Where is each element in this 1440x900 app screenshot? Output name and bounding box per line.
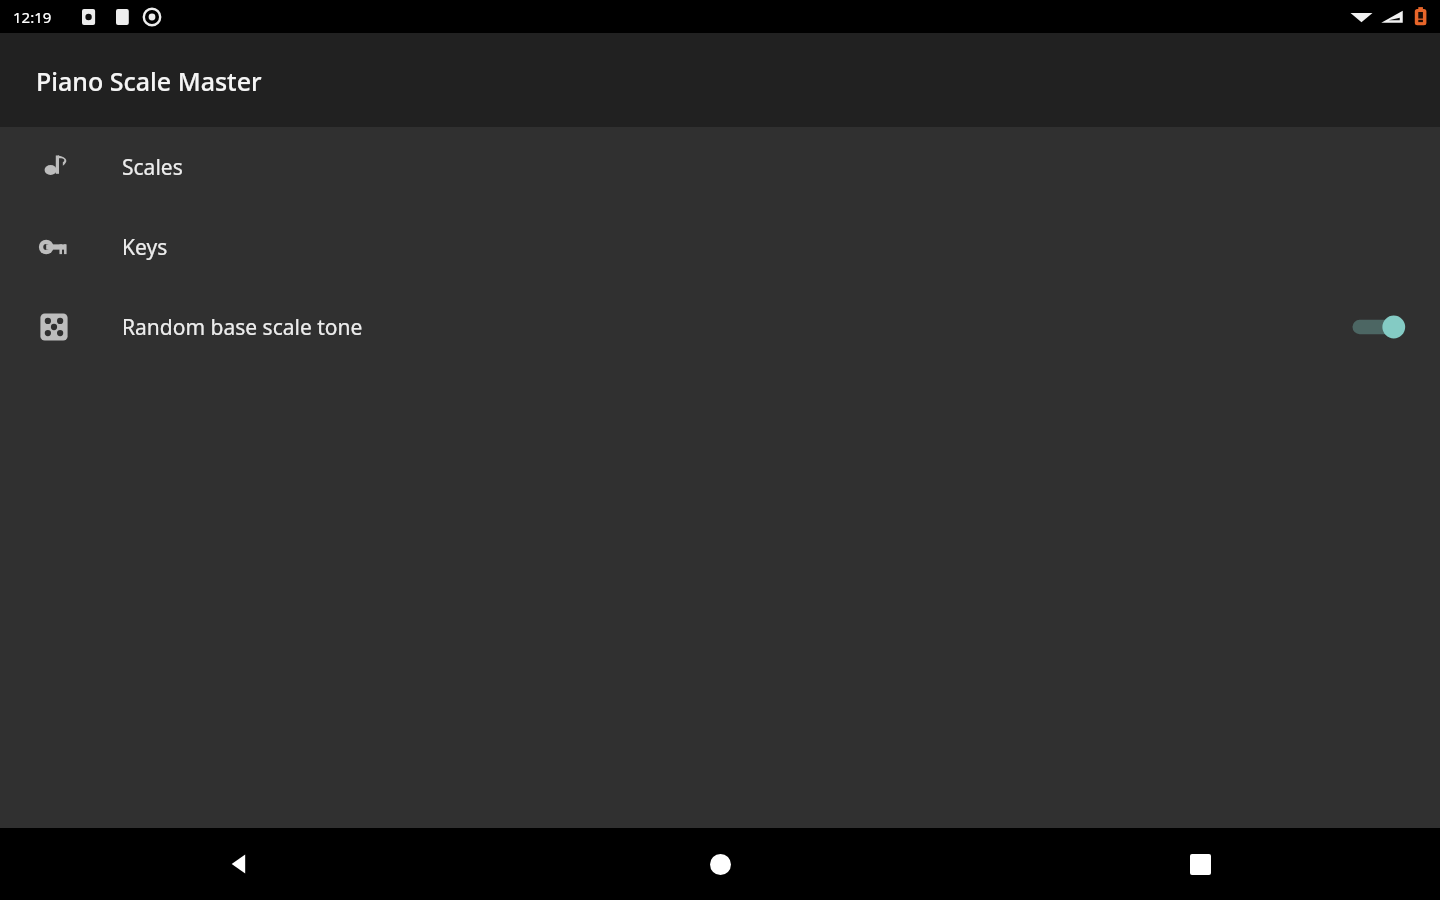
button[interactable]: Home [692,836,748,892]
staticText: Keys [122,233,168,262]
button[interactable]: Random base scale tone [0,287,1440,367]
button[interactable]: Recent apps [1172,836,1228,892]
staticText: 12:19 [13,7,52,27]
staticText: Random base scale tone [122,313,363,342]
other: Scales [37,150,71,184]
button[interactable]: Random base scale tone toggle [1350,307,1412,347]
button[interactable]: Scales [0,127,1440,207]
other: Random base scale tone [38,311,70,343]
button[interactable]: Back [212,836,268,892]
staticText: Piano Scale Master [36,64,262,98]
staticText: Scales [122,153,183,182]
other: Keys [37,230,71,264]
button[interactable]: Keys [0,207,1440,287]
